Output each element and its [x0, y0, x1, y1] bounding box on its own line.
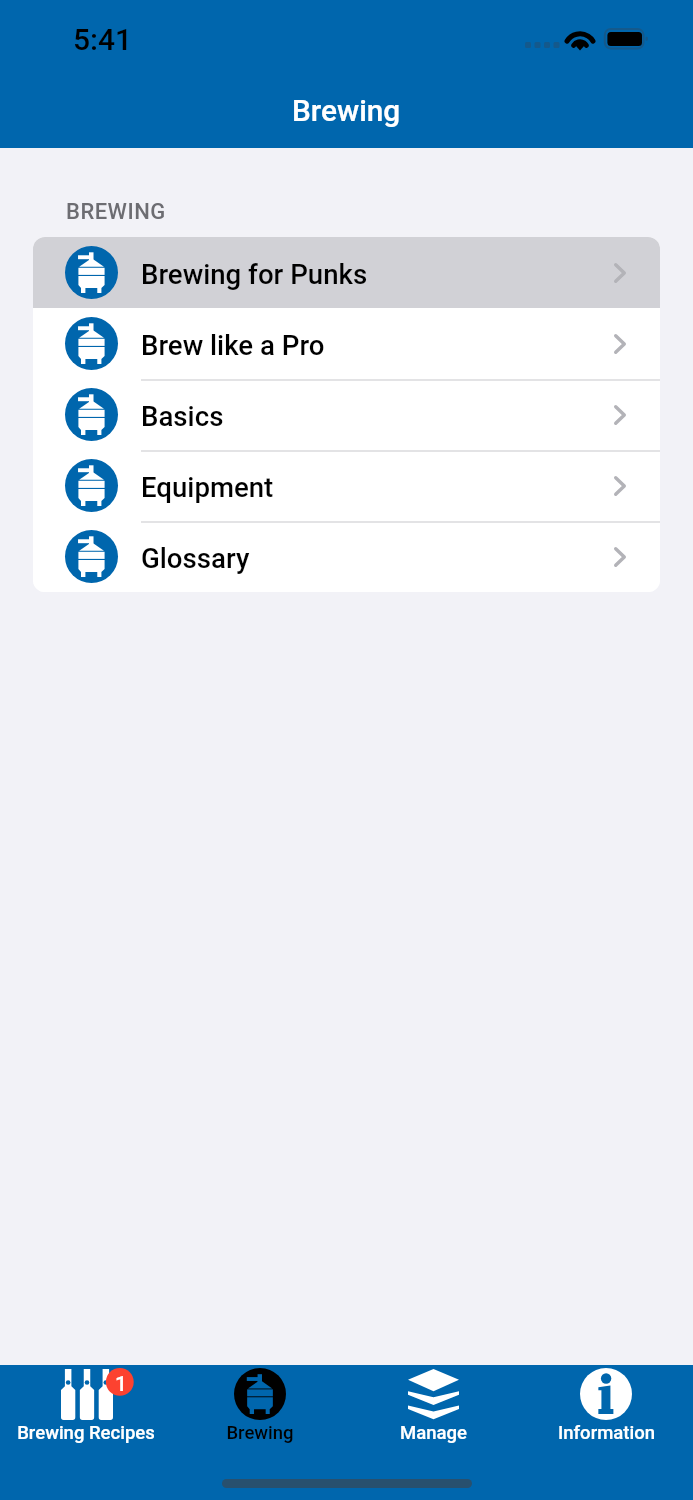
- staticText: Brew like a Pro: [141, 329, 325, 361]
- staticText: Brewing for Punks: [141, 258, 368, 290]
- button[interactable]: Brewing: [175, 1365, 345, 1447]
- staticText: BREWING: [66, 199, 166, 225]
- staticText: Manage: [400, 1422, 467, 1444]
- staticText: Brewing: [226, 1422, 294, 1444]
- staticText: Brewing Recipes: [17, 1422, 155, 1444]
- button[interactable]: Basics: [33, 379, 660, 450]
- staticText: Information: [558, 1422, 655, 1444]
- button[interactable]: Equipment: [33, 450, 660, 521]
- staticText: Basics: [141, 400, 224, 432]
- button[interactable]: Brewing for Punks: [33, 237, 660, 308]
- staticText: 1: [115, 1372, 127, 1397]
- staticText: Equipment: [141, 471, 274, 503]
- staticText: Brewing: [292, 93, 401, 128]
- button[interactable]: Brew like a Pro: [33, 308, 660, 379]
- button[interactable]: Manage: [348, 1365, 518, 1447]
- staticText: 5:41: [73, 22, 133, 57]
- button[interactable]: Brewing Recipes: [1, 1365, 171, 1447]
- button[interactable]: Glossary: [33, 521, 660, 592]
- staticText: Glossary: [141, 542, 250, 574]
- button[interactable]: Information: [521, 1365, 691, 1447]
